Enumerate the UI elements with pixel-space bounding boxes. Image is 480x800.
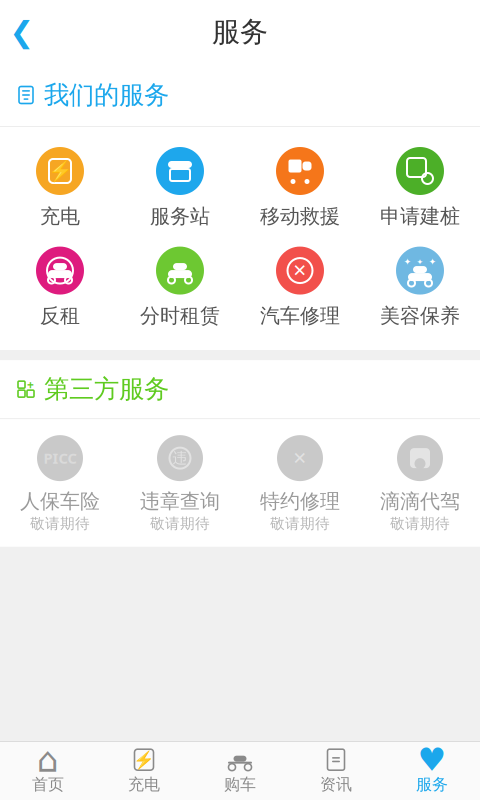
staticText: ⚡	[133, 750, 155, 770]
button[interactable]: Back	[0, 10, 44, 54]
staticText: 人保车险	[20, 489, 100, 514]
staticText: ♥	[417, 741, 446, 778]
staticText: 敬请期待	[390, 515, 450, 533]
staticText: 敬请期待	[150, 515, 210, 533]
staticText: 我们的服务	[44, 79, 169, 110]
staticText: 充电	[40, 204, 80, 229]
button[interactable]: ⚡	[0, 145, 120, 231]
staticText: 充电	[128, 775, 160, 794]
staticText: ❮	[9, 15, 34, 49]
staticText: 汽车修理	[260, 304, 340, 328]
staticText: 美容保养	[380, 304, 460, 328]
staticText: ✦	[416, 257, 423, 266]
button[interactable]: ♥	[384, 742, 480, 800]
button[interactable]: ✕	[240, 245, 360, 330]
staticText: 服务	[416, 775, 448, 794]
staticText: 违章查询	[140, 489, 220, 514]
button[interactable]: 移动救援	[240, 145, 360, 231]
button[interactable]: 服务站	[120, 145, 240, 231]
staticText: 敬请期待	[30, 515, 90, 533]
button[interactable]: ✕	[240, 435, 360, 533]
button[interactable]: 滴滴代驾	[360, 435, 480, 533]
staticText: 服务	[212, 15, 268, 49]
staticText: 购车	[224, 775, 256, 794]
staticText: +	[27, 377, 34, 393]
staticText: ✦	[403, 257, 411, 267]
button[interactable]: 购车	[192, 742, 288, 800]
staticText: ✕	[292, 261, 307, 280]
staticText: ✦	[428, 257, 436, 267]
button[interactable]: PICC	[0, 435, 120, 533]
staticText: 服务站	[150, 204, 210, 229]
staticText: 滴滴代驾	[380, 489, 460, 514]
staticText: 违	[172, 449, 187, 467]
button[interactable]: ⌂	[0, 742, 96, 800]
staticText: 第三方服务	[44, 374, 169, 405]
button[interactable]: 申请建桩	[360, 145, 480, 231]
staticText: ⚡	[47, 160, 72, 182]
staticText: 申请建桩	[380, 204, 460, 229]
button[interactable]: 分时租赁	[120, 245, 240, 330]
button[interactable]: ✦	[360, 245, 480, 330]
button[interactable]: 反租	[0, 245, 120, 330]
staticText: PICC	[43, 448, 76, 468]
staticText: 敬请期待	[270, 515, 330, 533]
staticText: ✕	[292, 448, 307, 468]
button[interactable]: 违	[120, 435, 240, 533]
staticText: ⌂	[37, 740, 59, 779]
staticText: 特约修理	[260, 489, 340, 514]
staticText: 分时租赁	[140, 304, 220, 328]
staticText: 资讯	[320, 775, 352, 794]
button[interactable]: ⚡	[96, 742, 192, 800]
staticText: 首页	[32, 775, 64, 794]
staticText: 移动救援	[260, 204, 340, 229]
button[interactable]: 资讯	[288, 742, 384, 800]
staticText: 反租	[40, 304, 80, 328]
